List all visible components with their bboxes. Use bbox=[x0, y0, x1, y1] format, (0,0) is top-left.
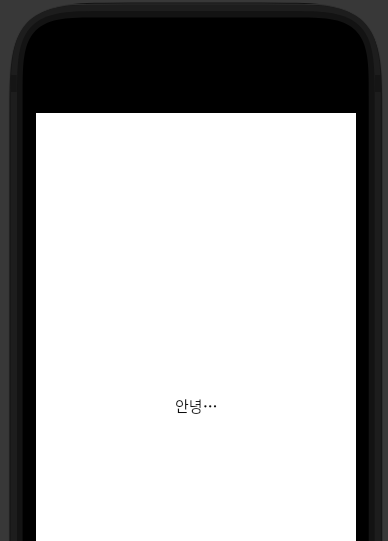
staticText: 안녕 bbox=[175, 395, 203, 417]
button[interactable]: 안녕 bbox=[166, 389, 226, 415]
